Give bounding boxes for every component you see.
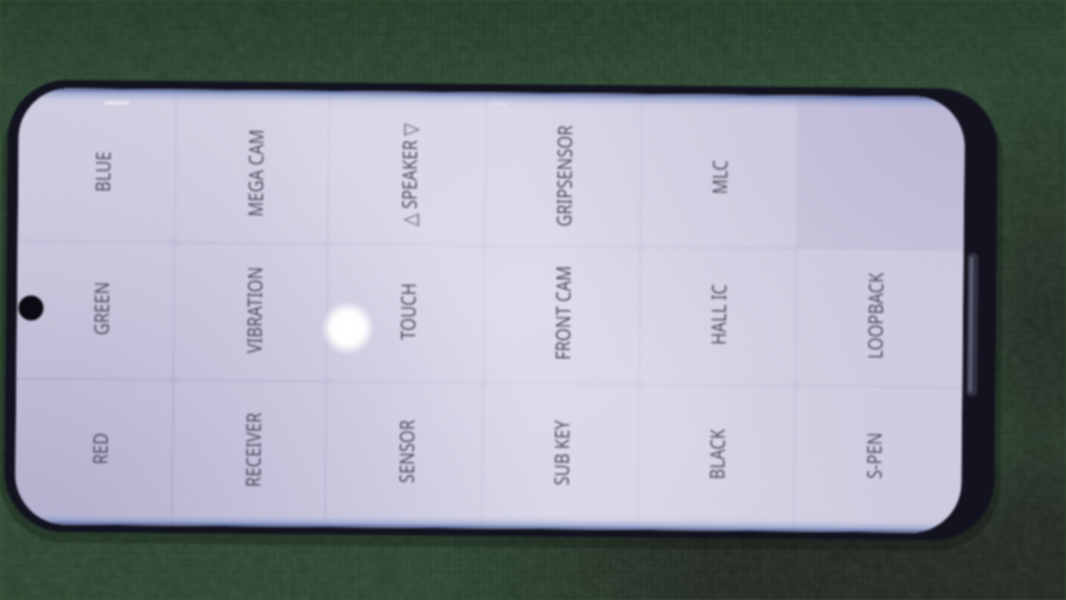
- button[interactable]: Phone hardware diagnostics test grid: [0, 0, 1066, 600]
